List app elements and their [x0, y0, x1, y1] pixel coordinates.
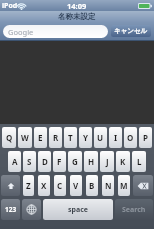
button[interactable]: E	[34, 127, 47, 148]
staticText: F	[57, 156, 62, 167]
button[interactable]: G	[68, 151, 82, 172]
button[interactable]: space	[43, 199, 113, 220]
button[interactable]: R	[49, 127, 62, 148]
button[interactable]: 123	[1, 199, 20, 220]
staticText: Q	[6, 132, 13, 143]
staticText: O	[127, 132, 134, 143]
staticText: I	[114, 132, 118, 143]
staticText: 14:09	[67, 1, 87, 11]
button[interactable]: D	[38, 151, 51, 172]
staticText: B	[89, 180, 95, 191]
button[interactable]: O	[124, 127, 137, 148]
button[interactable]: Shift	[1, 175, 20, 196]
staticText: Search	[122, 205, 146, 215]
button[interactable]: T	[64, 127, 77, 148]
button[interactable]: Z	[23, 175, 34, 196]
staticText: L	[137, 156, 142, 167]
button[interactable]: L	[132, 151, 146, 172]
staticText: G	[72, 156, 78, 167]
staticText: K	[120, 156, 126, 167]
staticText: キャンセル	[114, 27, 148, 35]
button[interactable]: K	[116, 151, 130, 172]
staticText: E	[38, 132, 43, 143]
button[interactable]: F	[53, 151, 66, 172]
button[interactable]: V	[70, 175, 82, 196]
staticText: 123	[5, 205, 17, 214]
staticText: 名称未設定	[58, 12, 96, 21]
button[interactable]: Y	[79, 127, 92, 148]
button[interactable]: A	[8, 151, 21, 172]
button[interactable]: Change keyboard	[22, 199, 41, 220]
staticText: J	[106, 156, 109, 167]
staticText: S	[27, 156, 32, 167]
button[interactable]: P	[139, 127, 152, 148]
staticText: D	[42, 156, 48, 167]
staticText: R	[53, 132, 59, 143]
staticText: P	[143, 132, 148, 143]
staticText: N	[105, 180, 112, 191]
button[interactable]: W	[18, 127, 32, 148]
button[interactable]: J	[100, 151, 114, 172]
staticText: V	[73, 180, 79, 191]
button[interactable]: X	[38, 175, 50, 196]
staticText: Z	[26, 180, 31, 191]
button[interactable]: N	[102, 175, 114, 196]
button[interactable]: I	[109, 127, 122, 148]
button[interactable]: M	[118, 175, 130, 196]
button[interactable]: H	[84, 151, 98, 172]
button[interactable]: C	[54, 175, 66, 196]
staticText: iPod	[2, 1, 18, 11]
button[interactable]: Search	[115, 199, 153, 220]
staticText: W	[21, 132, 29, 143]
button[interactable]: S	[23, 151, 36, 172]
staticText: X	[41, 180, 47, 191]
staticText: C	[57, 180, 63, 191]
button[interactable]: キャンセル	[111, 25, 151, 37]
staticText: Y	[83, 132, 89, 143]
staticText: A	[12, 156, 18, 167]
staticText: space	[68, 205, 88, 215]
button[interactable]: B	[86, 175, 98, 196]
button[interactable]: U	[94, 127, 107, 148]
button[interactable]: Q	[2, 127, 16, 148]
staticText: Google	[8, 27, 34, 37]
button[interactable]: Google	[3, 25, 108, 38]
staticText: U	[97, 132, 104, 143]
button[interactable]: Backspace	[133, 175, 153, 196]
staticText: H	[88, 156, 95, 167]
staticText: T	[68, 132, 73, 143]
staticText: M	[120, 180, 128, 191]
